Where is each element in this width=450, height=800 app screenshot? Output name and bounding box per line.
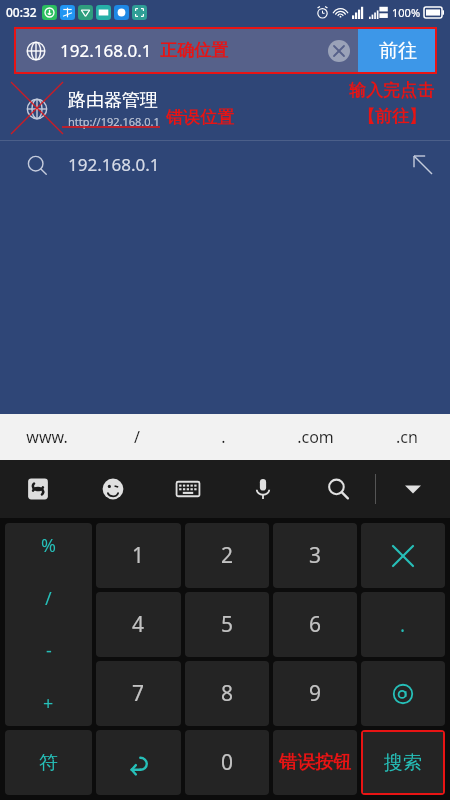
button[interactable]: 192.168.0.1 xyxy=(14,27,358,74)
button[interactable]: Hide keyboard xyxy=(376,460,450,518)
button[interactable]: 搜索 xyxy=(361,730,445,795)
button[interactable]: .com xyxy=(267,414,363,460)
button[interactable]: .cn xyxy=(363,414,450,460)
button[interactable]: Sogou input xyxy=(0,460,75,518)
button[interactable]: Search xyxy=(300,460,375,518)
button[interactable]: 7 xyxy=(96,661,181,726)
staticText: 0 xyxy=(221,748,234,777)
staticText: 3 xyxy=(309,541,322,570)
staticText: 6 xyxy=(309,610,322,639)
staticText: + xyxy=(43,691,54,716)
staticText: 00:32 xyxy=(6,4,37,20)
button[interactable]: 192.168.0.1 xyxy=(0,141,450,188)
staticText: 前往 xyxy=(379,39,417,63)
button[interactable]: Keyboard layout xyxy=(150,460,225,518)
staticText: . xyxy=(400,612,406,638)
staticText: 符 xyxy=(39,751,58,775)
staticText: 2 xyxy=(221,541,234,570)
staticText: 192.168.0.1 xyxy=(60,39,152,62)
button[interactable]: / xyxy=(93,414,180,460)
button[interactable]: Close xyxy=(361,523,445,588)
button[interactable]: 符 xyxy=(5,730,92,795)
staticText: 192.168.0.1 xyxy=(68,153,160,176)
button[interactable]: Emoji xyxy=(75,460,150,518)
staticText: 错误位置 xyxy=(166,107,234,128)
button[interactable]: 路由器管理 xyxy=(0,78,450,140)
button[interactable]: 0 xyxy=(185,730,269,795)
other: Fill xyxy=(414,156,432,174)
button[interactable]: At sign xyxy=(361,661,445,726)
staticText: .com xyxy=(297,426,334,448)
staticText: http://192.168.0.1 xyxy=(68,114,160,129)
staticText: 8 xyxy=(221,679,234,708)
button[interactable]: . xyxy=(180,414,267,460)
staticText: 5 xyxy=(221,610,234,639)
staticText: 搜索 xyxy=(384,751,422,775)
staticText: . xyxy=(221,426,226,448)
staticText: - xyxy=(46,638,52,663)
staticText: / xyxy=(134,426,140,448)
button[interactable]: 5 xyxy=(185,592,269,657)
staticText: 7 xyxy=(132,679,145,708)
staticText: 4 xyxy=(132,610,145,639)
button[interactable]: www. xyxy=(0,414,93,460)
button[interactable]: 4 xyxy=(96,592,181,657)
button[interactable]: Backspace xyxy=(96,730,181,795)
other: At sign xyxy=(392,683,414,705)
staticText: 路由器管理 xyxy=(68,89,158,112)
staticText: 错误按钮 xyxy=(279,751,351,774)
button[interactable]: . xyxy=(361,592,445,657)
button[interactable]: 前往 xyxy=(358,27,437,74)
other: Close xyxy=(393,546,413,566)
button[interactable]: 2 xyxy=(185,523,269,588)
staticText: % xyxy=(41,533,56,558)
staticText: 1 xyxy=(132,541,145,570)
button[interactable]: 6 xyxy=(273,592,357,657)
button[interactable]: Voice input xyxy=(225,460,300,518)
staticText: 9 xyxy=(309,679,322,708)
button[interactable]: 3 xyxy=(273,523,357,588)
other: Backspace xyxy=(126,750,152,776)
button[interactable]: 1 xyxy=(96,523,181,588)
staticText: 【前往】 xyxy=(358,106,426,127)
staticText: www. xyxy=(26,426,68,448)
staticText: / xyxy=(45,586,52,611)
button[interactable]: 8 xyxy=(185,661,269,726)
staticText: 输入完点击 xyxy=(349,80,434,101)
staticText: 正确位置 xyxy=(160,40,228,61)
button[interactable]: % xyxy=(5,523,92,726)
button[interactable]: Clear xyxy=(328,40,350,62)
button[interactable]: 错误按钮 xyxy=(273,730,357,795)
staticText: .cn xyxy=(396,426,418,448)
staticText: 100% xyxy=(392,5,421,20)
button[interactable]: 9 xyxy=(273,661,357,726)
